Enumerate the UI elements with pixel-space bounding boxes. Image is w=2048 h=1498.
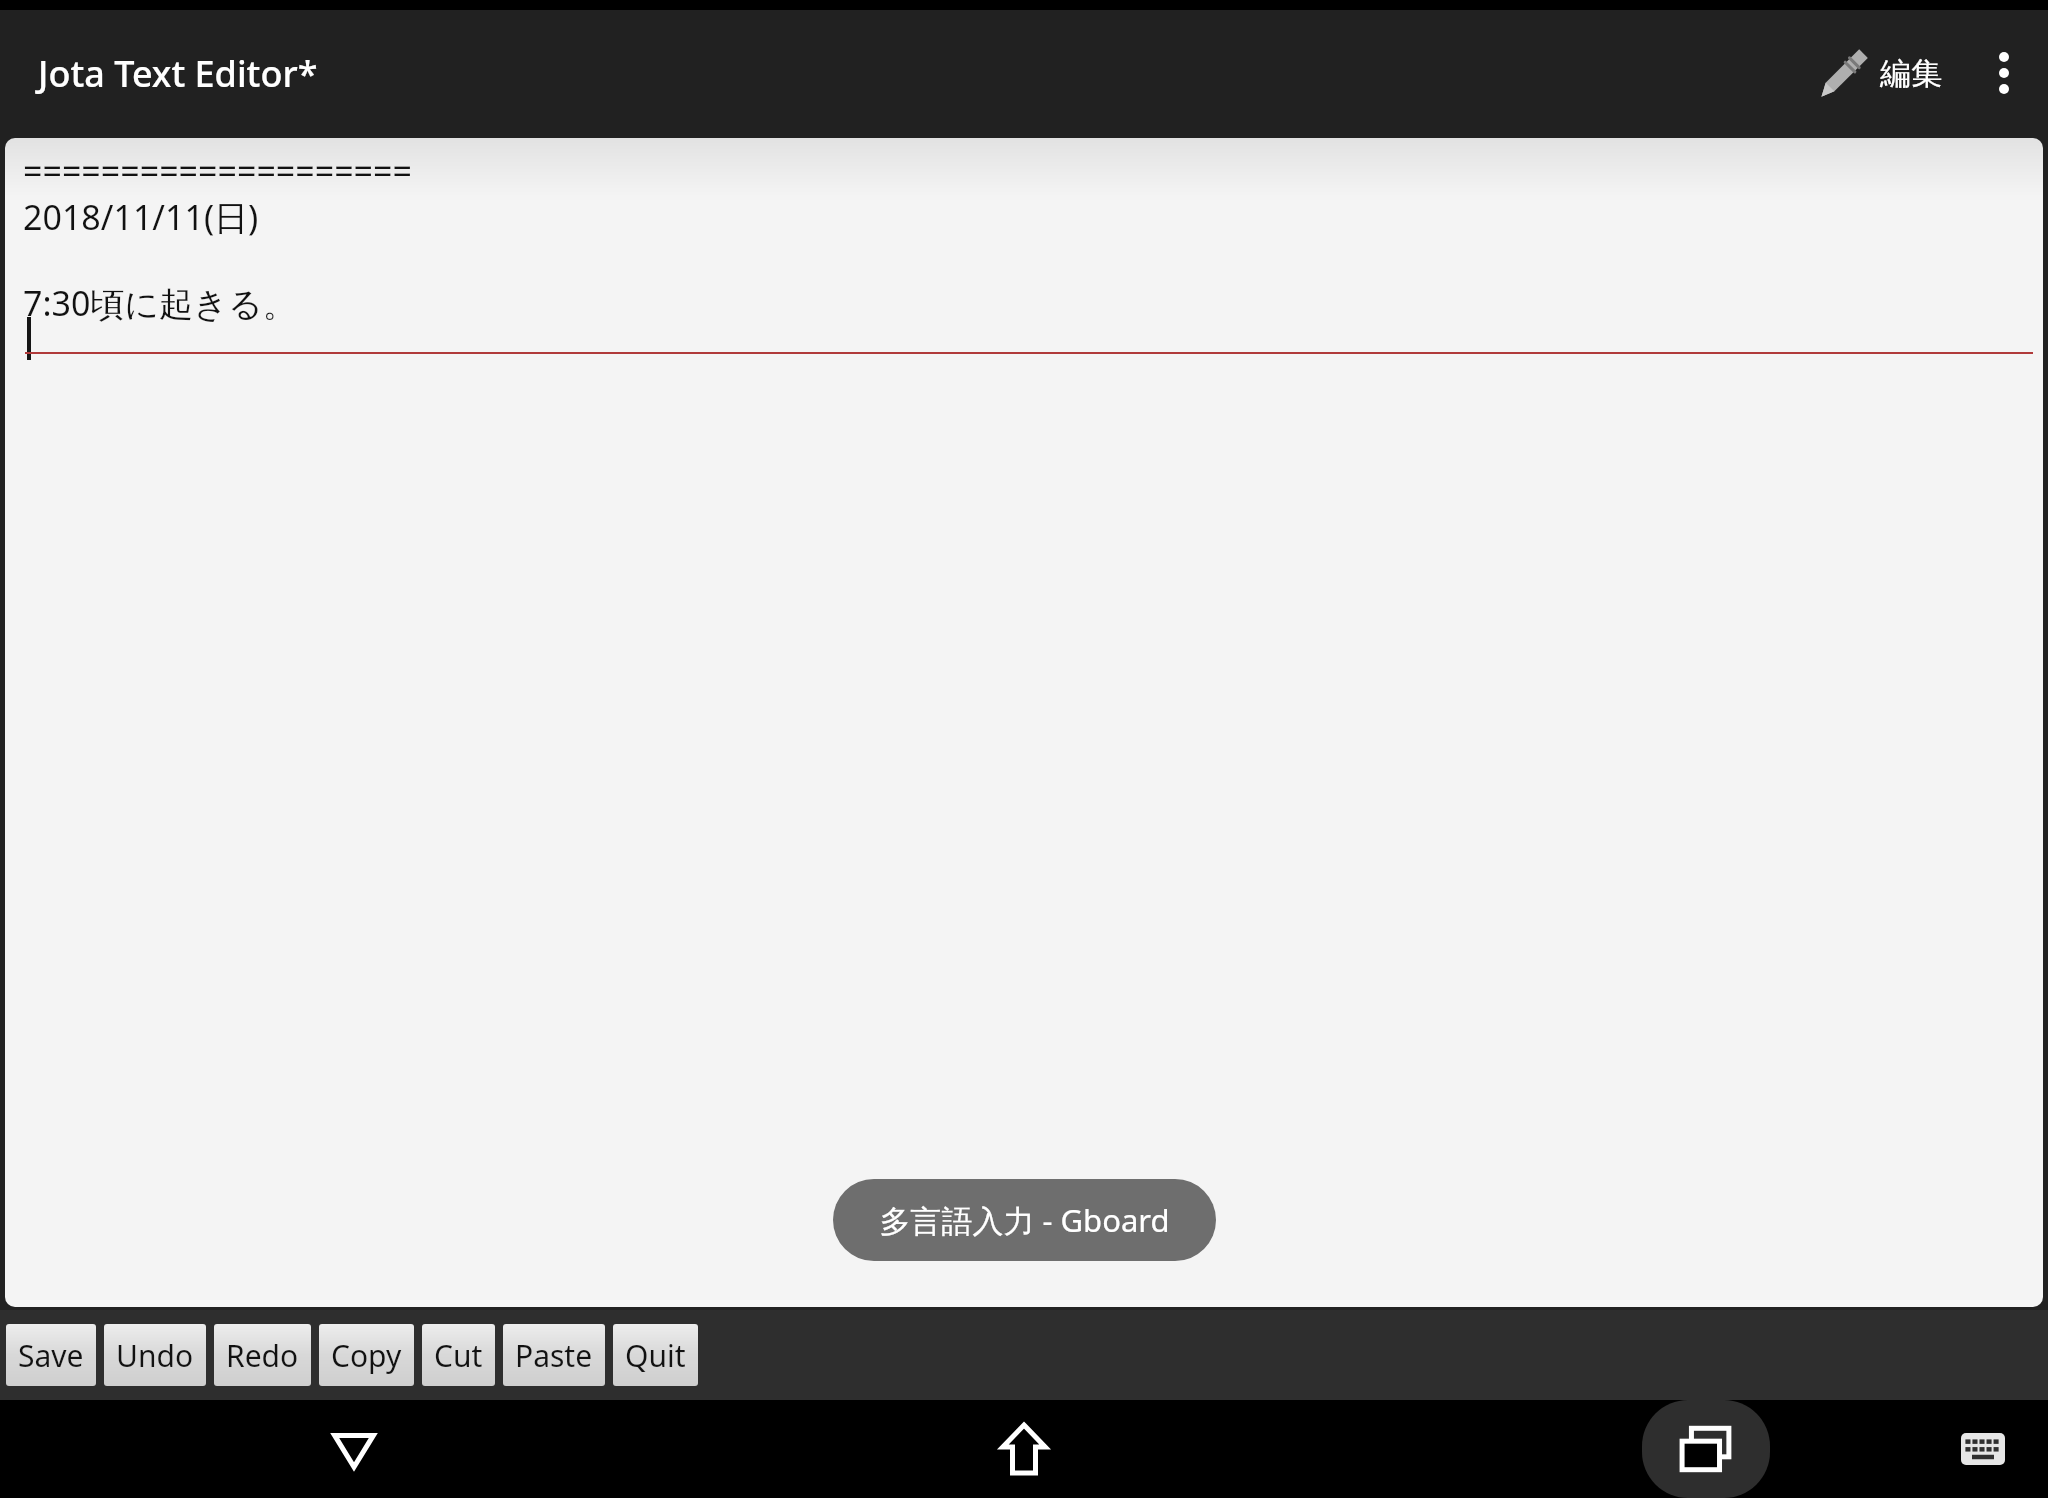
- staticText: ====================: [23, 148, 412, 194]
- staticText: Cut: [434, 1335, 483, 1376]
- staticText: 編集: [1880, 54, 1942, 93]
- staticText: Paste: [515, 1335, 593, 1376]
- button[interactable]: Save: [6, 1324, 96, 1386]
- staticText: 7:30頃に起きる。: [23, 280, 297, 326]
- button[interactable]: Change keyboard: [1948, 1414, 2018, 1484]
- staticText: Quit: [625, 1335, 686, 1376]
- button[interactable]: Cut: [422, 1324, 495, 1386]
- staticText: Save: [18, 1335, 84, 1376]
- button[interactable]: ====================: [5, 138, 2043, 1307]
- button[interactable]: Copy: [319, 1324, 414, 1386]
- staticText: Redo: [226, 1335, 299, 1376]
- button[interactable]: Back: [0, 1400, 707, 1498]
- button[interactable]: Recent apps: [1642, 1400, 1770, 1498]
- button[interactable]: Redo: [214, 1324, 311, 1386]
- button[interactable]: Quit: [613, 1324, 698, 1386]
- button[interactable]: Paste: [503, 1324, 605, 1386]
- button[interactable]: Home: [964, 1400, 1084, 1498]
- staticText: 2018/11/11(日): [23, 194, 259, 240]
- button[interactable]: More options: [1974, 43, 2034, 103]
- staticText: Copy: [331, 1335, 402, 1376]
- button[interactable]: 編集: [1806, 32, 1952, 114]
- button[interactable]: Undo: [104, 1324, 206, 1386]
- staticText: 多言語入力 - Gboard: [879, 1199, 1170, 1241]
- staticText: Undo: [116, 1335, 194, 1376]
- staticText: Jota Text Editor*: [38, 49, 318, 98]
